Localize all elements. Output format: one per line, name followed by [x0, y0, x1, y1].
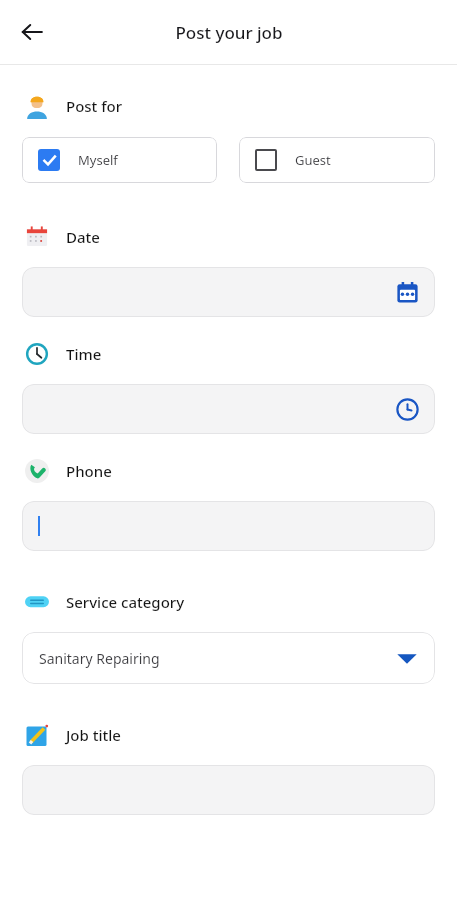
staticText: Myself — [78, 151, 118, 169]
staticText: Sanitary Repairing — [39, 649, 160, 668]
staticText: Post for — [66, 96, 123, 116]
staticText: Service category — [66, 592, 185, 612]
staticText: Phone — [66, 461, 112, 481]
button[interactable] — [22, 267, 435, 317]
staticText: Post your job — [175, 21, 283, 44]
staticText: Date — [66, 227, 100, 247]
staticText: Job title — [66, 725, 121, 745]
staticText: Guest — [295, 151, 331, 169]
button[interactable]: Sanitary Repairing — [22, 632, 435, 684]
button[interactable]: Guest — [239, 137, 435, 183]
button[interactable] — [22, 501, 435, 551]
button[interactable] — [22, 384, 435, 434]
button[interactable]: Myself — [22, 137, 217, 183]
staticText: Time — [66, 344, 102, 364]
button[interactable]: Back — [10, 10, 54, 54]
button[interactable] — [22, 765, 435, 815]
